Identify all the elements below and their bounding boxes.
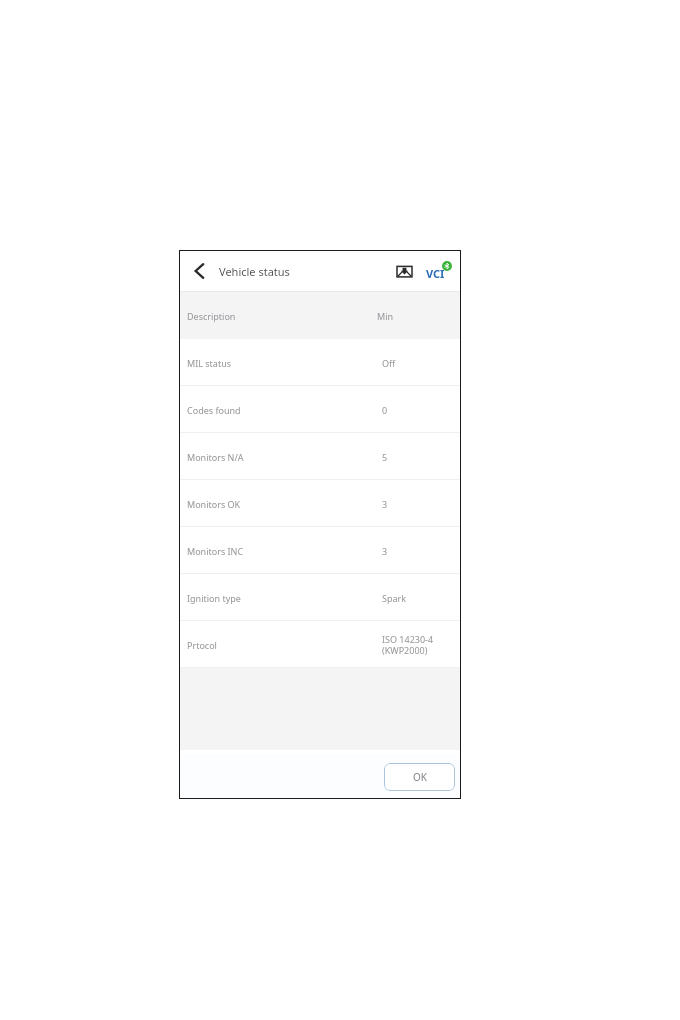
- button[interactable]: Ignition type: [179, 574, 461, 621]
- staticText: Off: [382, 357, 396, 369]
- staticText: OK: [413, 770, 427, 784]
- button[interactable]: Monitors N/A: [179, 433, 461, 480]
- button[interactable]: Codes found: [179, 386, 461, 433]
- staticText: Monitors OK: [187, 498, 382, 510]
- staticText: Min: [377, 310, 394, 322]
- staticText: 3: [382, 498, 388, 510]
- staticText: Monitors N/A: [187, 451, 382, 463]
- button[interactable]: Monitors OK: [179, 480, 461, 527]
- staticText: Vehicle status: [219, 264, 290, 279]
- staticText: MIL status: [187, 357, 382, 369]
- staticText: 0: [382, 404, 388, 416]
- staticText: 3: [382, 545, 388, 557]
- button[interactable]: Monitors INC: [179, 527, 461, 574]
- staticText: 5: [382, 451, 388, 463]
- button[interactable]: Messages: [389, 256, 419, 286]
- staticText: Prtocol: [187, 639, 382, 651]
- staticText: Codes found: [187, 404, 382, 416]
- staticText: Description: [187, 310, 377, 322]
- button[interactable]: Prtocol: [179, 621, 461, 668]
- button[interactable]: OK: [384, 763, 455, 791]
- button[interactable]: Back: [185, 256, 215, 286]
- button[interactable]: MIL status: [179, 339, 461, 386]
- staticText: Monitors INC: [187, 545, 382, 557]
- staticText: ISO 14230-4 (KWP2000): [382, 633, 434, 657]
- button[interactable]: VCI Bluetooth connected: [425, 256, 453, 286]
- staticText: Spark: [382, 592, 407, 604]
- staticText: Ignition type: [187, 592, 382, 604]
- staticText: VCI: [426, 266, 445, 281]
